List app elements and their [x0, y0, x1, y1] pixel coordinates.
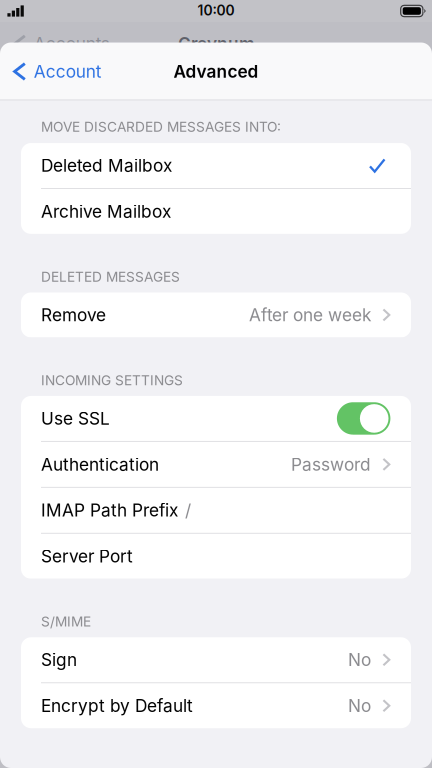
button[interactable]: IMAP Path Prefix [21, 488, 411, 533]
staticText: MOVE DISCARDED MESSAGES INTO: [41, 118, 281, 135]
staticText: / [185, 500, 191, 521]
staticText: S/MIME [41, 613, 91, 630]
staticText: Use SSL [41, 408, 110, 429]
button[interactable]: Remove [21, 292, 411, 337]
staticText: No [348, 695, 371, 716]
button[interactable]: Account [0, 42, 170, 100]
staticText: 10:00 [197, 2, 234, 19]
staticText: Accounts [34, 33, 110, 54]
staticText: Account [34, 61, 102, 82]
button[interactable]: Encrypt by Default [21, 683, 411, 728]
button[interactable]: Deleted Mailbox [21, 143, 411, 188]
button[interactable]: Archive Mailbox [21, 189, 411, 234]
staticText: Remove [41, 304, 106, 325]
staticText: Archive Mailbox [41, 201, 171, 222]
staticText: Server Port [41, 546, 133, 567]
staticText: Password [291, 454, 371, 475]
staticText: Greynum [178, 33, 254, 54]
button[interactable]: Use SSL [21, 396, 411, 441]
staticText: Deleted Mailbox [41, 155, 172, 176]
button[interactable]: Sign [21, 637, 411, 682]
staticText: Encrypt by Default [41, 695, 193, 716]
staticText: Advanced [173, 61, 258, 82]
staticText: Authentication [41, 454, 159, 475]
staticText: After one week [249, 304, 371, 325]
staticText: No [348, 649, 371, 670]
button[interactable]: Authentication [21, 442, 411, 487]
staticText: DELETED MESSAGES [41, 268, 180, 285]
staticText: IMAP Path Prefix [41, 500, 178, 521]
staticText: Sign [41, 649, 77, 670]
button[interactable]: Server Port [21, 534, 411, 579]
staticText: INCOMING SETTINGS [41, 372, 183, 388]
